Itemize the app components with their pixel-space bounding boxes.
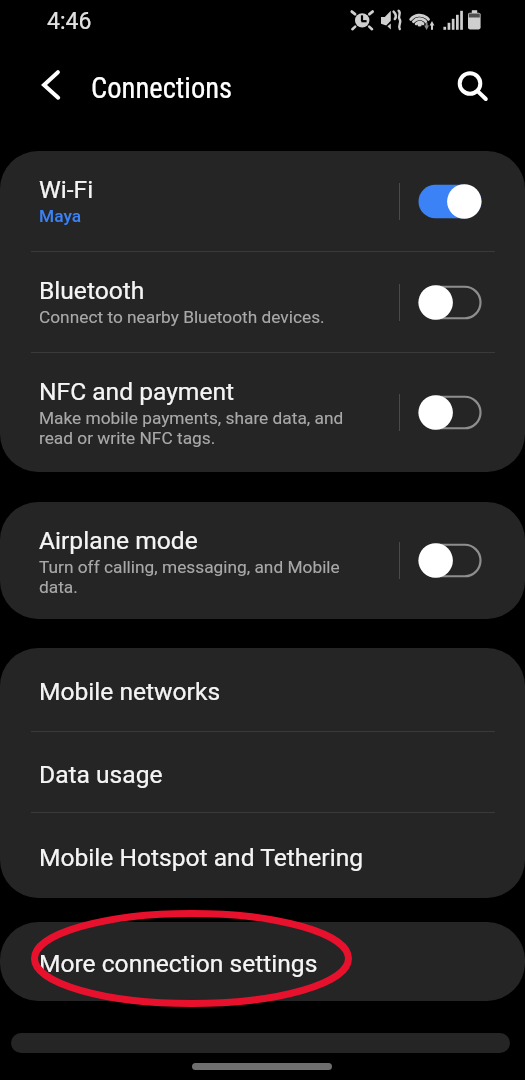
staticText: Mobile Hotspot and Tethering: [39, 843, 364, 872]
staticText: Maya: [39, 206, 82, 226]
button[interactable]: Airplane mode: [0, 502, 525, 619]
button[interactable]: Search: [450, 63, 494, 107]
staticText: Wi-Fi: [39, 175, 94, 204]
button[interactable]: More connection settings: [0, 922, 525, 1001]
staticText: 4:46: [47, 8, 92, 35]
button[interactable]: Toggle: [418, 543, 482, 578]
staticText: Turn off calling, messaging, and Mobile …: [39, 557, 340, 597]
button[interactable]: Wi-Fi: [0, 151, 525, 251]
button[interactable]: Toggle: [418, 285, 482, 320]
staticText: Data usage: [39, 760, 163, 789]
staticText: Airplane mode: [39, 526, 198, 555]
staticText: Mobile networks: [39, 677, 221, 706]
button[interactable]: Toggle: [418, 184, 482, 219]
staticText: Connect to nearby Bluetooth devices.: [39, 307, 325, 327]
staticText: Make mobile payments, share data, and re…: [39, 408, 344, 448]
button[interactable]: Toggle: [418, 395, 482, 430]
button[interactable]: Mobile networks: [0, 648, 525, 731]
staticText: More connection settings: [39, 949, 318, 978]
button[interactable]: Bluetooth: [0, 252, 525, 352]
button[interactable]: Mobile Hotspot and Tethering: [0, 813, 525, 898]
staticText: Bluetooth: [39, 276, 145, 305]
button[interactable]: Data usage: [0, 732, 525, 812]
button[interactable]: Back: [26, 63, 70, 107]
staticText: Connections: [91, 71, 233, 105]
staticText: NFC and payment: [39, 377, 235, 406]
button[interactable]: NFC and payment: [0, 353, 525, 472]
